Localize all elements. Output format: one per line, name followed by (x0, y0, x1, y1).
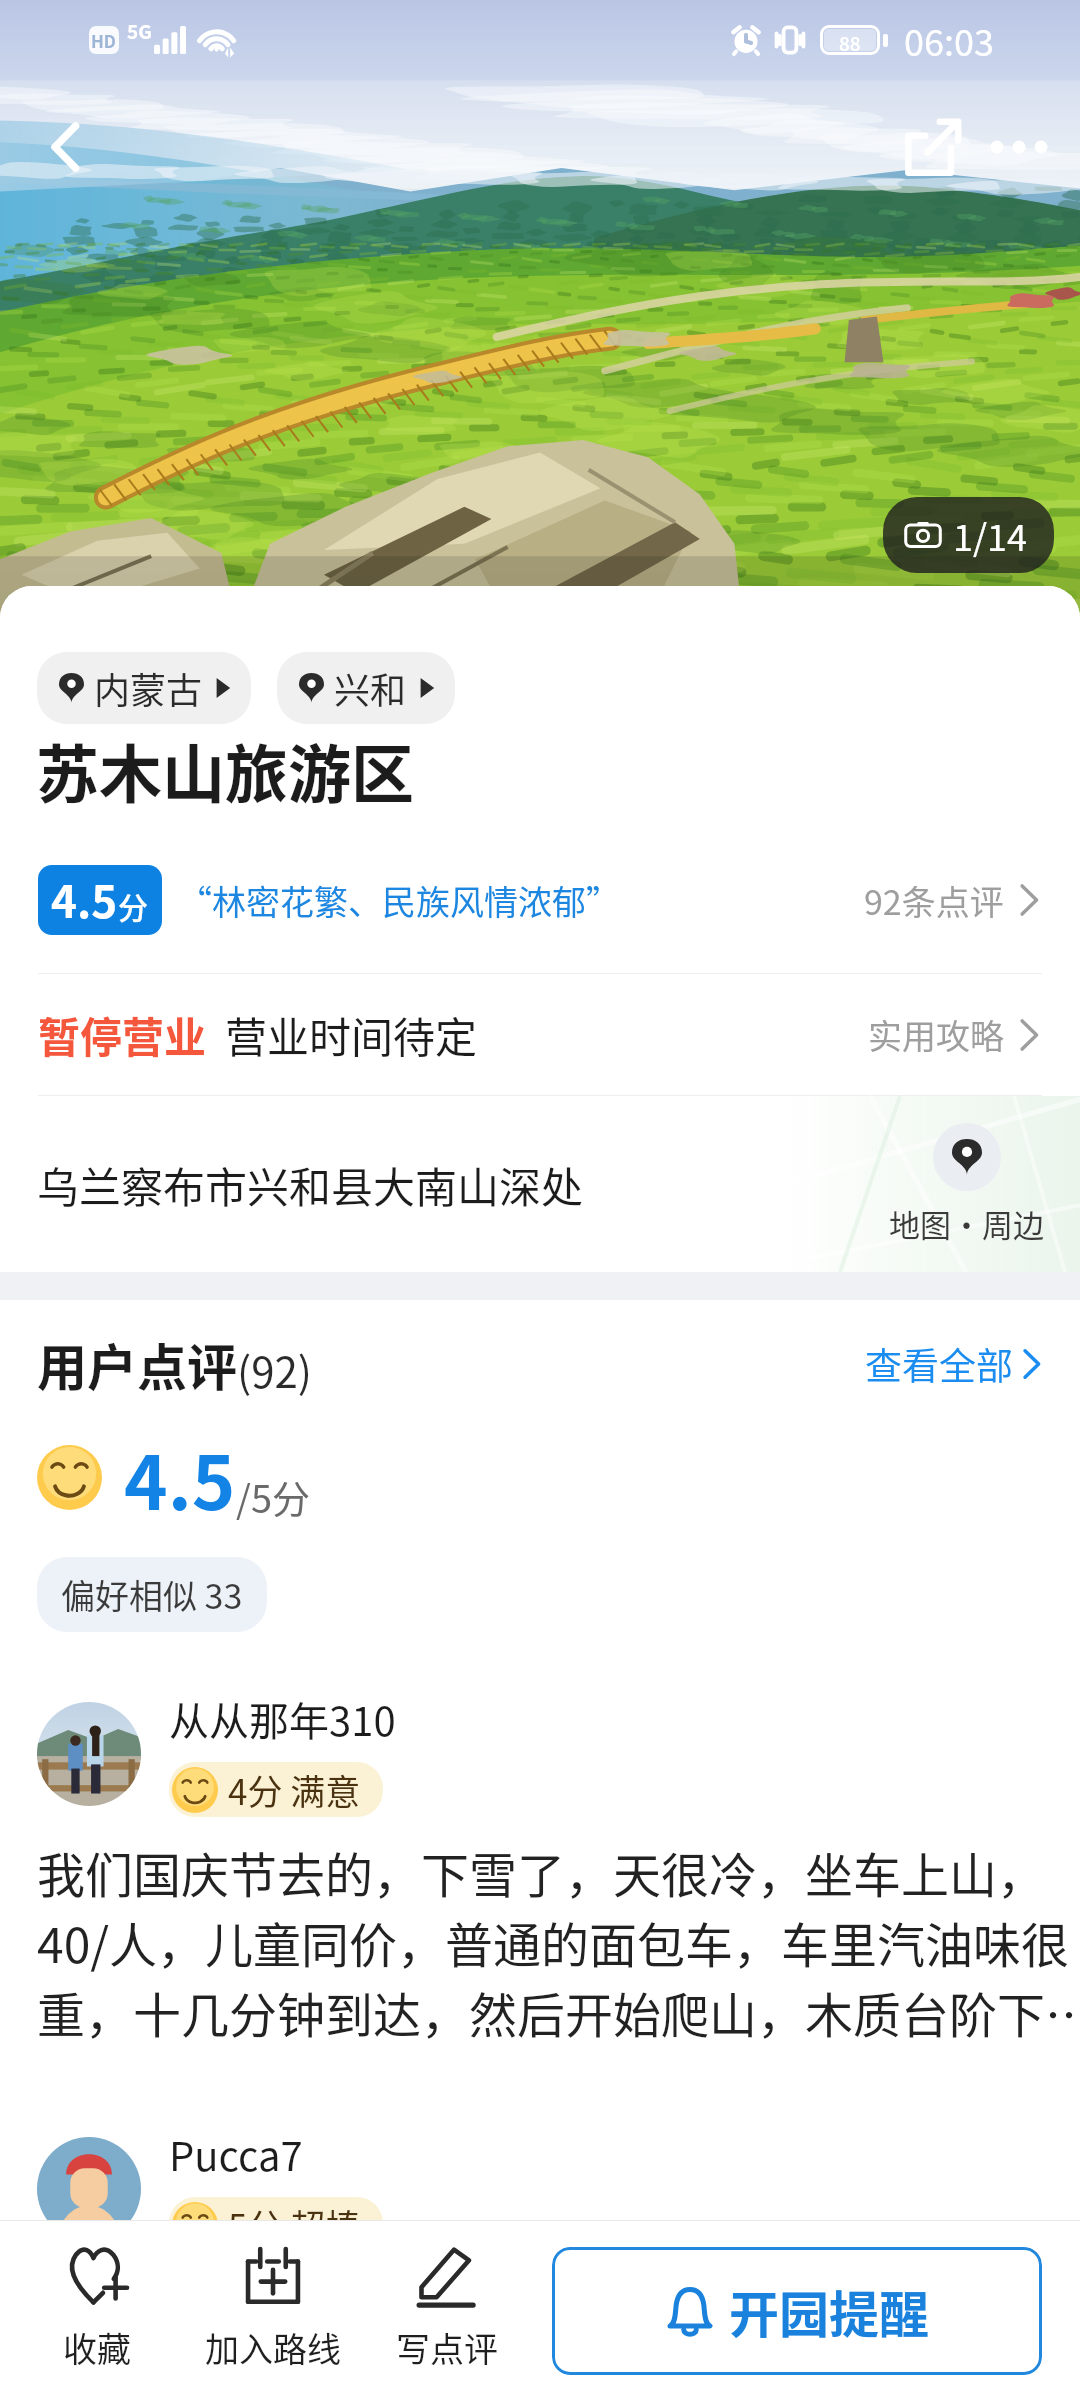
staticText: 查看全部 (865, 1337, 1013, 1391)
staticText: 分 (118, 884, 148, 927)
staticText: 地图·周边 (889, 1201, 1044, 1246)
staticText: 从从那年310 (169, 1690, 396, 1748)
staticText: 乌兰察布市兴和县大南山深处 (37, 1154, 584, 1215)
button[interactable]: Pucca7 (0, 2125, 1080, 2252)
button[interactable]: Share (890, 104, 976, 190)
staticText: 92条点评 (864, 876, 1004, 925)
staticText: (92) (237, 1339, 313, 1400)
staticText: 加入路线 (205, 2323, 341, 2372)
staticText: 5分 超棒 (228, 2199, 361, 2250)
staticText: 暂停营业 (38, 1004, 207, 1065)
button[interactable]: More options (976, 104, 1062, 190)
staticText: 1/14 (953, 509, 1028, 561)
staticText: “林密花繁、民族风情浓郁” (178, 876, 620, 925)
staticText: HD (91, 28, 117, 53)
staticText: 06:03 (904, 14, 994, 66)
button[interactable]: 内蒙古 (37, 652, 251, 724)
staticText: 开园提醒 (729, 2275, 929, 2347)
staticText: 偏好相似 33 (61, 1570, 243, 1619)
staticText: 4.5 (51, 867, 118, 931)
staticText: Pucca7 (169, 2125, 303, 2183)
button[interactable]: 偏好相似 33 (37, 1557, 267, 1632)
staticText: /5分 (236, 1469, 310, 1524)
button[interactable]: 写点评 (360, 2221, 534, 2400)
button[interactable]: 乌兰察布市兴和县大南山深处 (0, 1096, 1080, 1272)
button[interactable]: 查看全部 (865, 1337, 1040, 1391)
staticText: 5G (127, 17, 152, 45)
staticText: 实用攻略 (868, 1010, 1004, 1059)
staticText: 40/人，儿童同价，普通的面包车，车里汽油味很 (37, 1907, 1070, 1977)
staticText: 用户点评 (37, 1328, 237, 1400)
button[interactable]: 暂停营业 (0, 974, 1080, 1095)
staticText: 88 (839, 29, 861, 51)
staticText: 苏木山旅游区 (36, 724, 414, 815)
button[interactable]: 收藏 (8, 2221, 186, 2400)
button[interactable]: Photo gallery 1 of 14 (883, 497, 1054, 573)
button[interactable]: Back (24, 105, 108, 189)
staticText: 收藏 (63, 2323, 131, 2372)
staticText: 我们国庆节去的，下雪了，天很冷，坐车上山， (37, 1837, 1046, 1907)
staticText: 内蒙古 (94, 662, 203, 714)
staticText: 营业时间待定 (225, 1004, 478, 1065)
staticText: 4.5 (124, 1424, 236, 1531)
staticText: 重，十几分钟到达，然后开始爬山，木质台阶下… (37, 1977, 1080, 2047)
button[interactable]: 开园提醒 (552, 2247, 1042, 2375)
button[interactable]: 从从那年310 (0, 1690, 1080, 2047)
staticText: 4分 满意 (228, 1764, 361, 1815)
staticText: 兴和 (334, 662, 407, 714)
button[interactable]: 加入路线 (186, 2221, 360, 2400)
staticText: 写点评 (396, 2323, 498, 2372)
button[interactable]: 兴和 (277, 652, 455, 724)
button[interactable]: 4.5 (0, 865, 1080, 935)
